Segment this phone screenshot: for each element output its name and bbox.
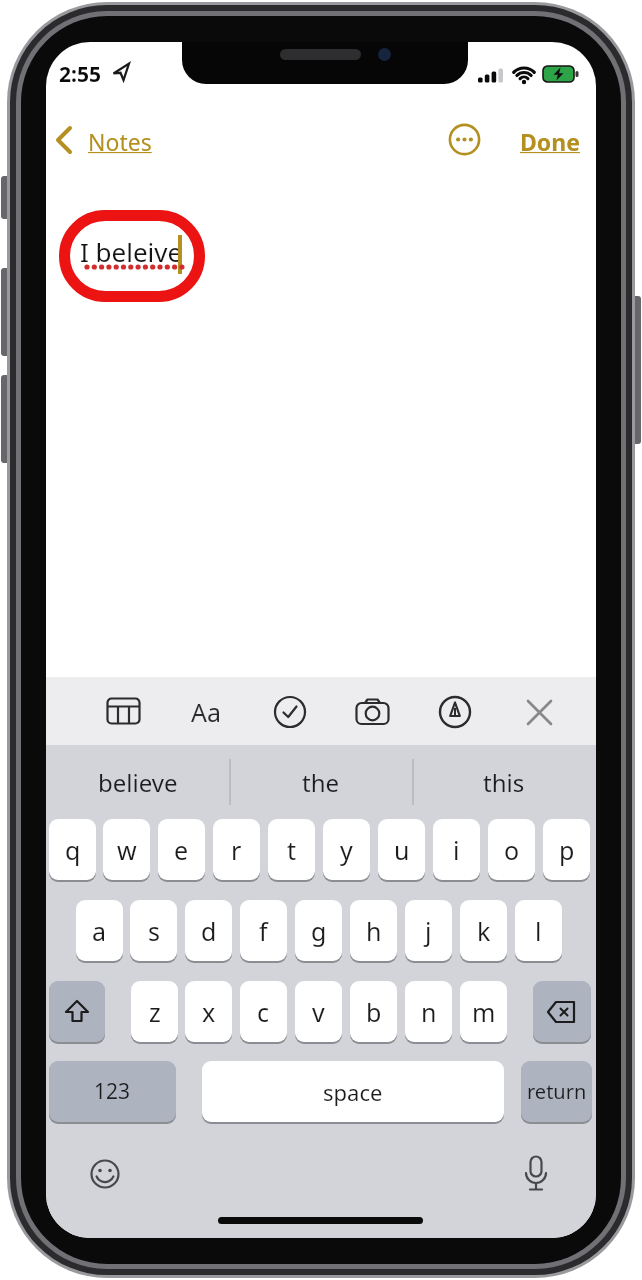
staticText: y xyxy=(340,833,353,867)
button[interactable]: d xyxy=(185,900,232,961)
staticText: l xyxy=(535,914,542,948)
staticText: t xyxy=(287,833,297,867)
staticText: q xyxy=(65,833,81,867)
staticText: Aa xyxy=(191,695,222,727)
button[interactable]: e xyxy=(158,819,205,880)
button[interactable]: believe xyxy=(46,745,229,819)
staticText: the xyxy=(302,766,340,799)
button[interactable]: v xyxy=(295,981,342,1042)
button[interactable] xyxy=(526,699,553,726)
staticText: v xyxy=(312,995,325,1029)
button[interactable] xyxy=(106,696,142,726)
staticText: p xyxy=(559,833,575,867)
button[interactable]: this xyxy=(412,745,596,819)
staticText: a xyxy=(92,914,107,948)
button[interactable]: n xyxy=(405,981,452,1042)
staticText: f xyxy=(259,914,268,948)
staticText: s xyxy=(148,914,160,948)
staticText: g xyxy=(311,914,327,948)
button[interactable] xyxy=(89,1158,121,1190)
button[interactable] xyxy=(49,981,105,1042)
staticText: u xyxy=(394,833,410,867)
staticText: b xyxy=(366,995,382,1029)
staticText: o xyxy=(504,833,520,867)
staticText: space xyxy=(323,1077,383,1107)
button[interactable]: i xyxy=(433,819,480,880)
button[interactable]: a xyxy=(76,900,123,961)
button[interactable]: q xyxy=(49,819,96,880)
button[interactable]: the xyxy=(229,745,412,819)
button[interactable] xyxy=(439,696,471,728)
button[interactable]: b xyxy=(350,981,397,1042)
button[interactable]: Notes xyxy=(82,126,158,156)
staticText: n xyxy=(421,995,437,1029)
staticText: i xyxy=(453,833,460,867)
button[interactable]: k xyxy=(460,900,507,961)
staticText: z xyxy=(149,995,161,1029)
button[interactable]: Done xyxy=(518,126,582,156)
staticText: m xyxy=(472,995,496,1029)
staticText: believe xyxy=(98,766,178,799)
button[interactable] xyxy=(274,696,306,728)
button[interactable]: g xyxy=(295,900,342,961)
button[interactable]: w xyxy=(103,819,150,880)
staticText: 2:55 xyxy=(59,60,101,88)
staticText: x xyxy=(202,995,216,1029)
staticText: e xyxy=(174,833,189,867)
button[interactable]: f xyxy=(240,900,287,961)
button[interactable] xyxy=(448,123,481,156)
staticText: d xyxy=(201,914,217,948)
staticText: this xyxy=(483,766,525,799)
button[interactable]: s xyxy=(130,900,177,961)
button[interactable] xyxy=(533,981,591,1042)
button[interactable]: m xyxy=(460,981,507,1042)
button[interactable]: o xyxy=(488,819,535,880)
staticText: Notes xyxy=(88,126,152,156)
button[interactable]: z xyxy=(131,981,178,1042)
staticText: k xyxy=(477,914,491,948)
button[interactable]: 123 xyxy=(49,1061,176,1122)
button[interactable]: x xyxy=(185,981,232,1042)
staticText: Done xyxy=(520,126,580,156)
staticText: w xyxy=(117,833,137,867)
button[interactable] xyxy=(54,126,76,154)
button[interactable]: y xyxy=(323,819,370,880)
button[interactable]: j xyxy=(405,900,452,961)
button[interactable]: c xyxy=(240,981,287,1042)
staticText: c xyxy=(257,995,270,1029)
button[interactable]: space xyxy=(202,1061,504,1122)
button[interactable]: p xyxy=(543,819,590,880)
staticText: I beleive xyxy=(80,234,178,268)
staticText: j xyxy=(425,914,432,948)
button[interactable]: t xyxy=(268,819,315,880)
staticText: h xyxy=(366,914,382,948)
button[interactable]: h xyxy=(350,900,397,961)
button[interactable] xyxy=(355,698,391,726)
staticText: 123 xyxy=(94,1077,131,1106)
button[interactable]: return xyxy=(521,1061,592,1122)
staticText: r xyxy=(231,833,242,867)
button[interactable]: r xyxy=(213,819,260,880)
button[interactable]: l xyxy=(515,900,562,961)
button[interactable] xyxy=(521,1155,551,1195)
button[interactable]: u xyxy=(378,819,425,880)
staticText: return xyxy=(527,1078,587,1105)
